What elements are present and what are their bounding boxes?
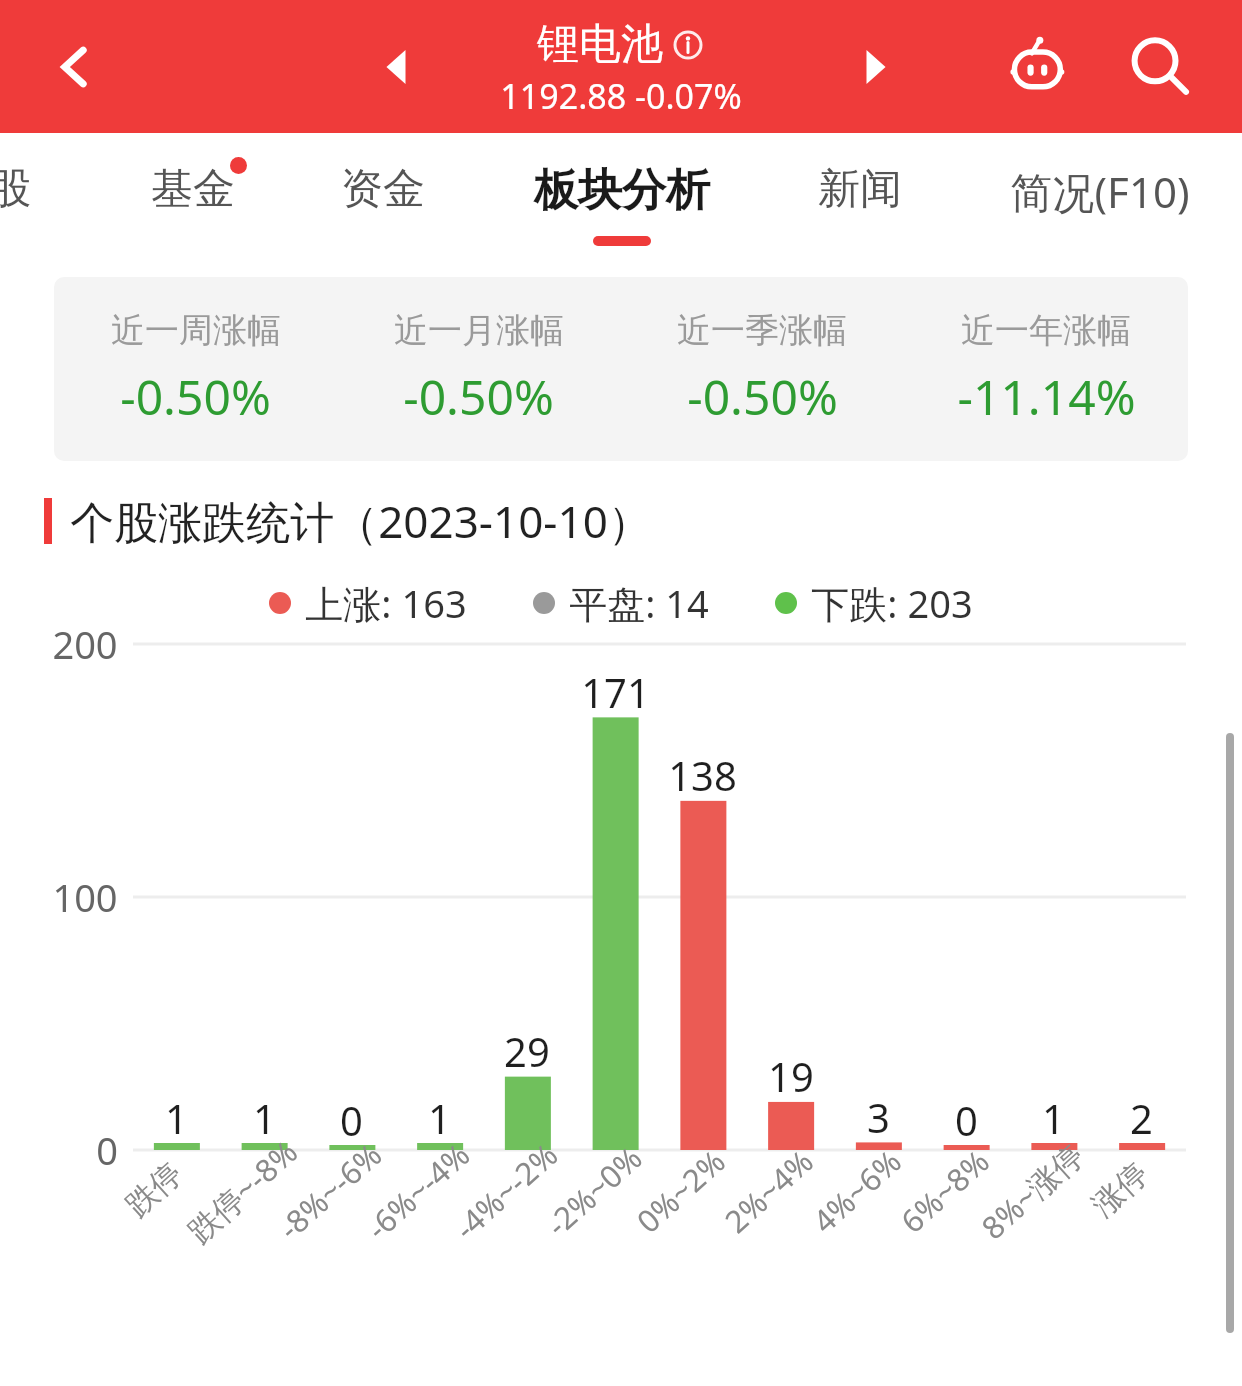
staticText: 19: [768, 1049, 814, 1103]
staticText: 板块分析: [534, 163, 710, 218]
staticText: 0: [96, 1124, 118, 1176]
button[interactable]: 资金: [341, 163, 425, 216]
button[interactable]: Search: [1114, 21, 1206, 113]
staticText: 平盘: 14: [569, 577, 709, 629]
staticText: -8%~-6%: [269, 1134, 390, 1248]
button[interactable]: Next sector: [836, 29, 912, 105]
staticText: 近一年涨幅: [961, 309, 1131, 352]
staticText: 近一季涨幅: [677, 309, 847, 352]
staticText: 跌停: [118, 1154, 190, 1225]
staticText: 资金: [341, 163, 425, 216]
staticText: -11.14%: [957, 364, 1136, 429]
staticText: -0.50%: [120, 364, 271, 429]
staticText: 近一月涨幅: [394, 309, 564, 352]
staticText: 1: [165, 1091, 188, 1145]
staticText: 0: [340, 1093, 363, 1147]
staticText: 1: [1042, 1091, 1065, 1145]
staticText: 4%~6%: [803, 1140, 909, 1242]
staticText: 上涨: 163: [305, 577, 467, 629]
button[interactable]: 基金: [151, 163, 235, 216]
staticText: -0.50%: [687, 364, 838, 429]
staticText: 简况(F10): [1010, 163, 1190, 220]
button[interactable]: Back: [40, 31, 112, 103]
staticText: 近一周涨幅: [111, 309, 281, 352]
staticText: 跌停~-8%: [178, 1131, 306, 1251]
staticText: 新闻: [818, 163, 902, 216]
staticText: 8%~涨停: [972, 1134, 1092, 1248]
staticText: 0%~2%: [627, 1140, 733, 1242]
staticText: 基金: [151, 163, 235, 216]
staticText: 2%~4%: [715, 1140, 821, 1242]
button[interactable]: 股: [0, 163, 31, 216]
staticText: 138: [668, 748, 737, 802]
staticText: 29: [504, 1024, 550, 1078]
staticText: 1192.88 -0.07%: [500, 73, 742, 119]
staticText: 6%~8%: [891, 1140, 997, 1242]
button[interactable]: 平盘: 14: [533, 577, 709, 629]
staticText: -2%~0%: [537, 1137, 650, 1245]
staticText: 个股涨跌统计（2023-10-10）: [70, 491, 652, 551]
staticText: -0.50%: [403, 364, 554, 429]
button[interactable]: 下跌: 203: [775, 577, 973, 629]
staticText: 2: [1130, 1091, 1153, 1145]
staticText: 涨停: [1084, 1154, 1156, 1225]
staticText: 0: [955, 1093, 978, 1147]
button[interactable]: 近一周涨幅: [54, 277, 1188, 461]
button[interactable]: Info: [671, 28, 705, 62]
staticText: 下跌: 203: [811, 577, 973, 629]
staticText: 锂电池: [537, 18, 663, 71]
staticText: 100: [52, 871, 118, 923]
staticText: -4%~-2%: [445, 1134, 566, 1248]
button[interactable]: Previous sector: [360, 29, 436, 105]
staticText: 1: [428, 1091, 451, 1145]
button[interactable]: AI assistant: [992, 21, 1084, 113]
staticText: 171: [581, 665, 650, 719]
button[interactable]: 新闻: [818, 163, 902, 216]
staticText: 股: [0, 163, 31, 216]
staticText: 3: [867, 1090, 890, 1144]
staticText: 200: [52, 618, 118, 670]
staticText: -6%~-4%: [357, 1134, 478, 1248]
button[interactable]: 板块分析: [534, 163, 710, 246]
staticText: 1: [253, 1091, 276, 1145]
button[interactable]: 上涨: 163: [269, 577, 467, 629]
button[interactable]: 简况(F10): [1010, 163, 1190, 220]
